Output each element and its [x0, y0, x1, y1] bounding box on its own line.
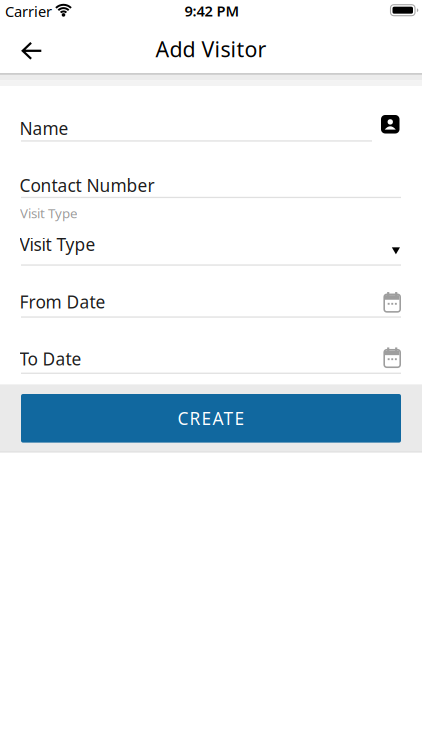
staticText: Visit Type [20, 204, 78, 222]
staticText: Contact Number [19, 174, 154, 197]
staticText: Add Visitor [155, 35, 266, 63]
button[interactable]: Contact Number [21, 160, 401, 198]
button[interactable]: From Date [21, 282, 401, 318]
staticText: 9:42 PM [184, 1, 239, 21]
staticText: Name [19, 117, 68, 140]
staticText: From Date [19, 290, 105, 313]
button[interactable] [381, 115, 399, 133]
staticText: Visit Type [19, 233, 95, 256]
button[interactable]: CREATE [21, 394, 401, 443]
button[interactable]: Name [21, 104, 401, 142]
button[interactable]: Visit Type [21, 226, 401, 266]
staticText: Carrier [5, 2, 52, 21]
staticText: To Date [19, 347, 81, 370]
button[interactable] [11, 31, 53, 71]
staticText: CREATE [177, 407, 244, 430]
button[interactable]: To Date [21, 338, 401, 374]
